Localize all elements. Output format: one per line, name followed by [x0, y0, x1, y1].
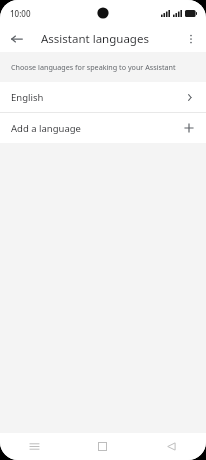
- button[interactable]: Back: [137, 433, 206, 460]
- button[interactable]: Add a language: [0, 113, 206, 143]
- staticText: 10:00: [10, 8, 31, 19]
- staticText: English: [11, 91, 182, 104]
- staticText: Assistant languages: [41, 31, 149, 47]
- staticText: Add a language: [11, 122, 182, 135]
- button[interactable]: Recent apps: [0, 433, 68, 460]
- button[interactable]: Back: [5, 27, 29, 51]
- button[interactable]: Home: [68, 433, 137, 460]
- button[interactable]: English: [0, 82, 206, 112]
- staticText: Choose languages for speaking to your As…: [11, 62, 176, 72]
- button[interactable]: More options: [179, 27, 203, 51]
